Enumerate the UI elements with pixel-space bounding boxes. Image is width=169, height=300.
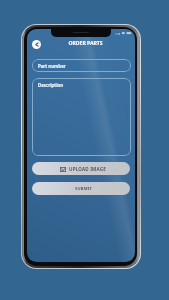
staticText: Description bbox=[38, 82, 64, 88]
button[interactable]: Description bbox=[32, 78, 131, 156]
button[interactable]: SUBMIT bbox=[32, 182, 130, 195]
staticText: UPLOAD IMAGE bbox=[69, 166, 106, 172]
staticText: ORDER PARTS bbox=[68, 40, 103, 47]
staticText: SUBMIT bbox=[75, 186, 92, 192]
button[interactable]: Back bbox=[32, 40, 41, 49]
button[interactable]: UPLOAD IMAGE bbox=[32, 162, 130, 175]
button[interactable]: Part number bbox=[32, 59, 131, 72]
staticText: Part number bbox=[38, 63, 66, 69]
